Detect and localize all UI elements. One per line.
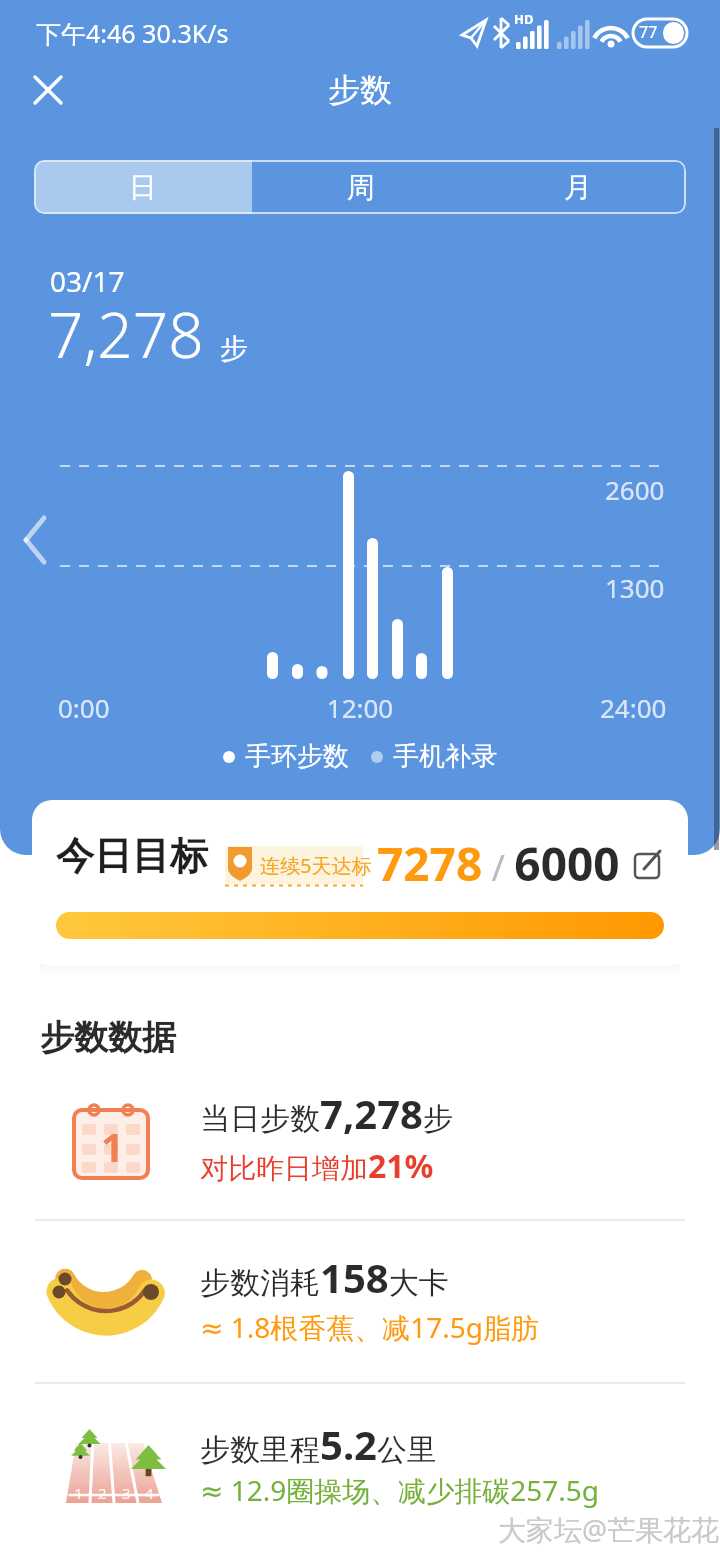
button[interactable]: 日 [34,160,252,214]
button[interactable]: 步数消耗158大卡 [0,1232,720,1380]
staticText: 手环步数 [245,740,349,773]
staticText: 3 [122,1483,131,1503]
staticText: ≈ 1.8根香蕉、减17.5g脂肪 [200,1308,540,1346]
button[interactable]: 今日目标 [32,800,688,966]
staticText: 大家坛@芒果花花 [498,1510,720,1548]
staticText: 月 [564,170,592,205]
staticText: 7278 / 6000 [377,832,620,895]
staticText: 步数里程5.2公里 [200,1417,437,1471]
staticText: 1 [101,1119,124,1173]
button[interactable]: 周 [252,160,469,214]
button[interactable] [634,849,664,879]
staticText: HD [514,10,534,28]
staticText: 24:00 [600,690,667,725]
staticText: 7,278 步 [48,292,248,376]
staticText: 周 [347,170,375,205]
staticText: 2 [98,1483,107,1503]
staticText: 1300 [605,570,665,605]
button[interactable]: 1 [0,1395,720,1540]
staticText: 步数数据 [40,1016,176,1059]
staticText: 对比昨日增加21% [200,1144,434,1188]
staticText: 1 [74,1483,83,1503]
staticText: 4 [145,1483,154,1503]
staticText: ≈ 12.9圈操场、减少排碳257.5g [200,1471,600,1509]
button[interactable]: 1 [0,1070,720,1218]
staticText: 今日目标 [56,832,208,880]
staticText: 步数消耗158大卡 [200,1250,449,1304]
button[interactable] [24,66,72,114]
staticText: 2600 [605,472,665,507]
staticText: 03/17 [50,262,125,300]
button[interactable]: 月 [469,160,686,214]
staticText: 12:00 [0,690,720,725]
staticText: 当日步数7,278步 [200,1086,453,1140]
staticText: 手机补录 [393,740,497,773]
staticText: 0:00 [58,690,110,725]
staticText: 77 [639,21,658,43]
staticText: 连续5天达标 [260,852,372,879]
staticText: 步数 [0,70,720,110]
staticText: 下午4:46 30.3K/s [36,16,229,50]
staticText: 日 [129,170,157,205]
